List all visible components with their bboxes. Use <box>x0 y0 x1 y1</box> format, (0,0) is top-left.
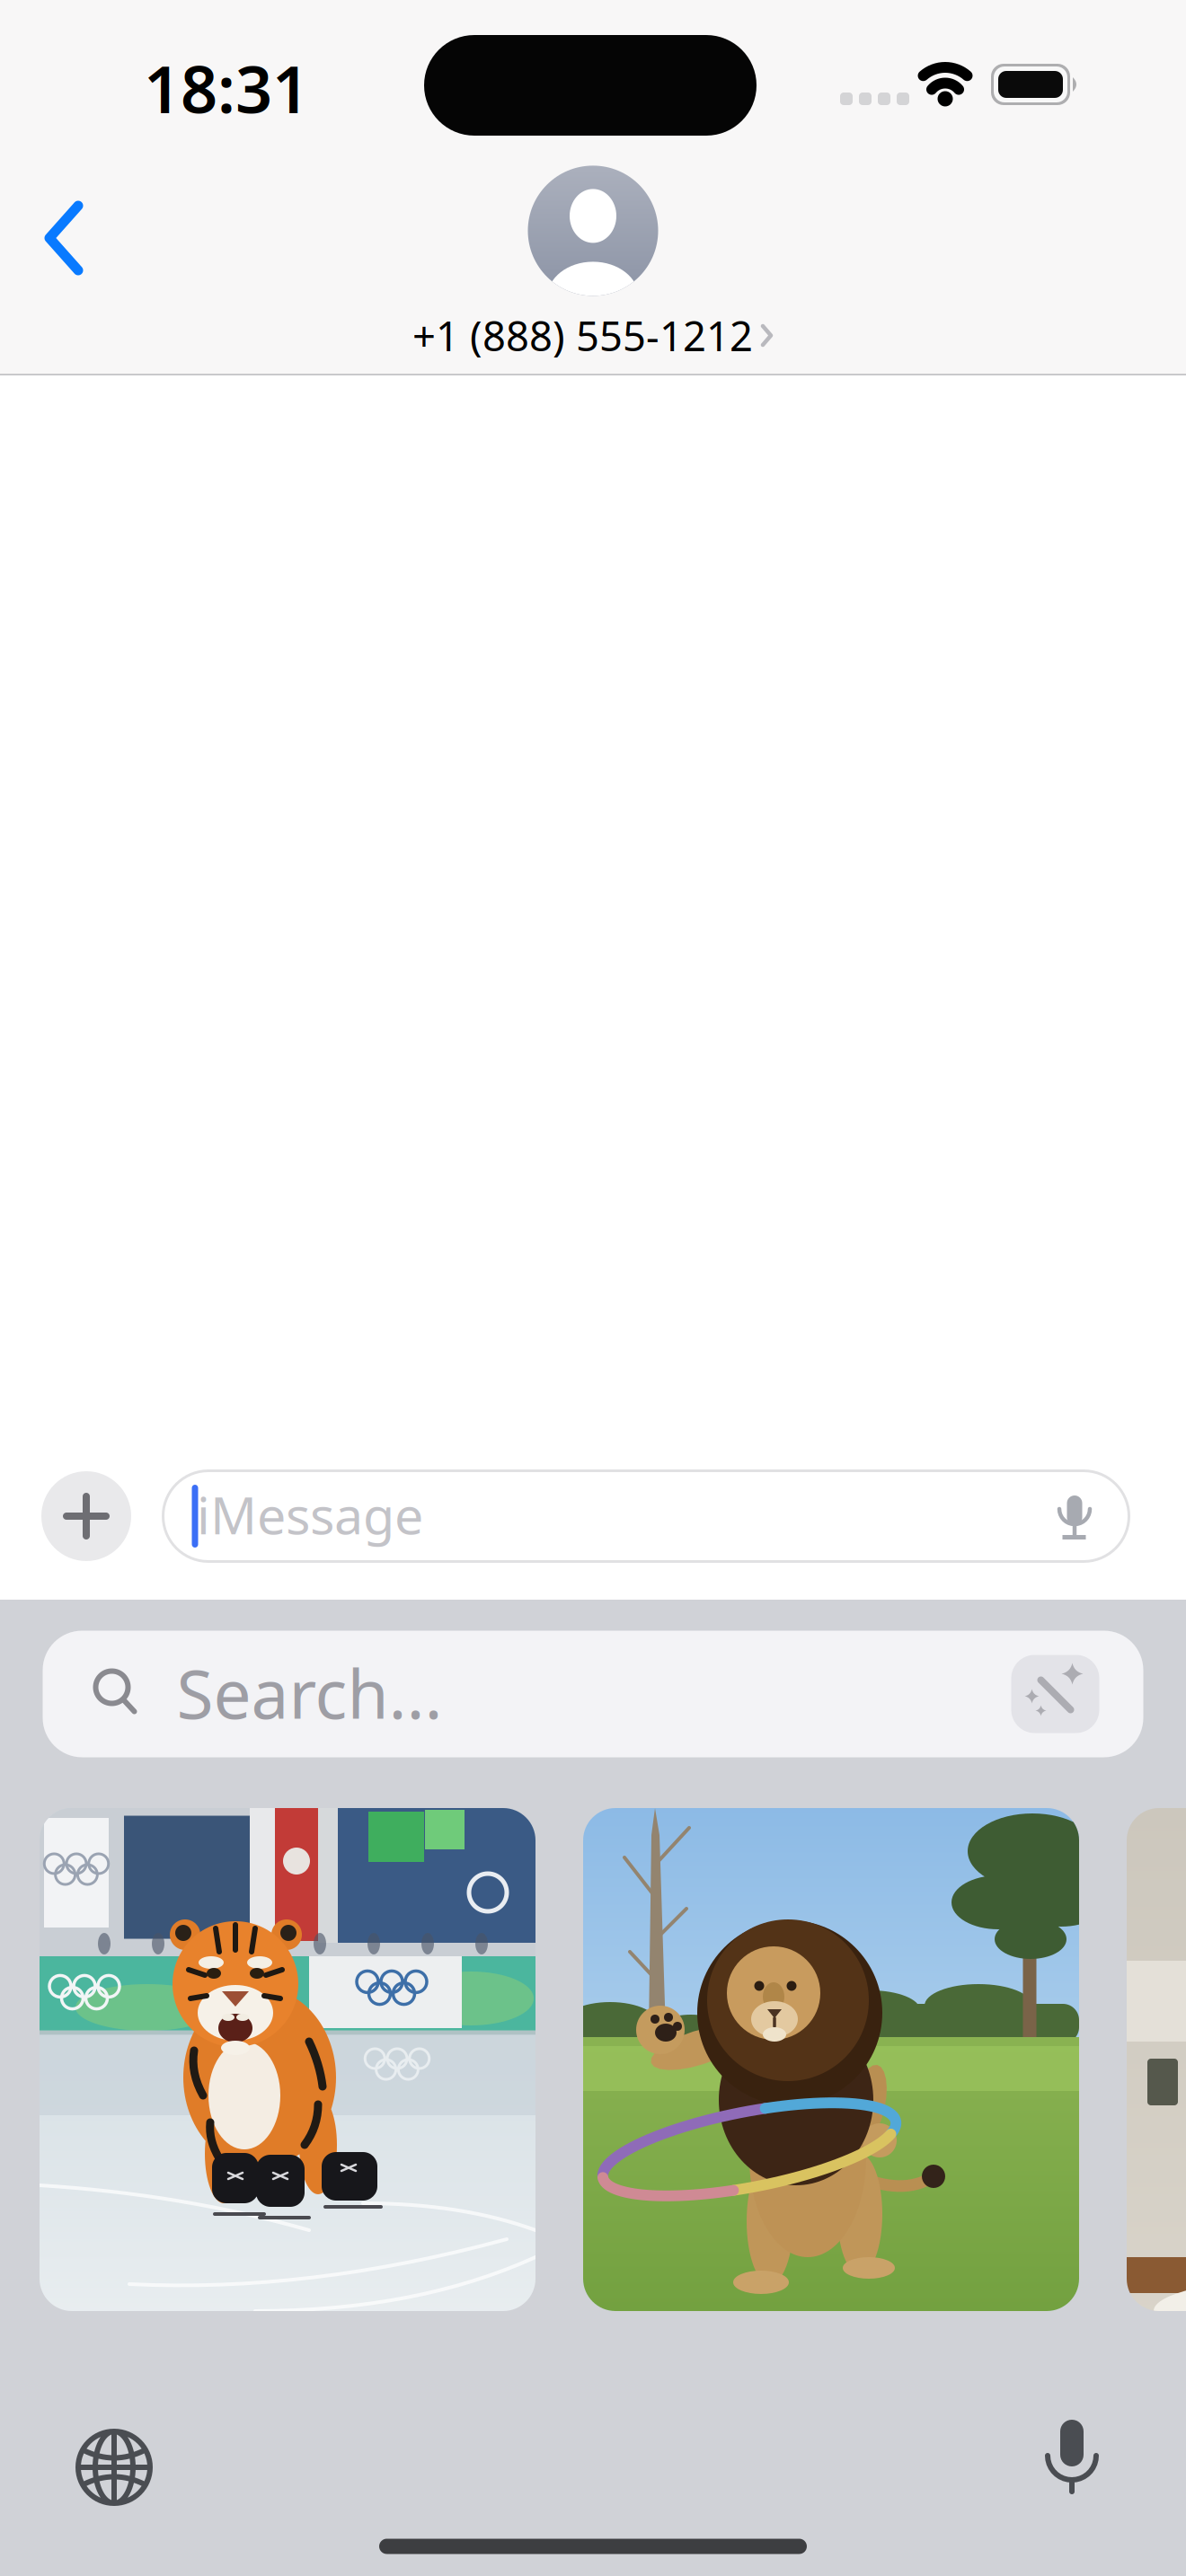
button[interactable]: Room image <box>1127 1808 1186 2311</box>
button[interactable]: Tiger speed skating image <box>40 1808 535 2311</box>
staticText: iMessage <box>197 1480 423 1548</box>
button[interactable]: Dictate <box>1048 1490 1102 1544</box>
staticText: Search... <box>177 1648 443 1737</box>
button[interactable]: Lion hula hooping image <box>583 1808 1079 2311</box>
button[interactable]: Apps <box>41 1471 131 1561</box>
button[interactable]: Generate image <box>1011 1655 1099 1733</box>
button[interactable]: Back <box>19 197 109 279</box>
button[interactable]: Next keyboard <box>60 2413 168 2521</box>
button[interactable]: iMessage <box>162 1469 1130 1563</box>
staticText: +1 (888) 555-1212 <box>412 308 753 363</box>
button[interactable]: Search... <box>43 1631 1143 1757</box>
button[interactable]: +1 (888) 555-1212 <box>412 166 774 363</box>
staticText: 18:31 <box>144 45 309 131</box>
button[interactable]: Dictation <box>1031 2420 1112 2495</box>
